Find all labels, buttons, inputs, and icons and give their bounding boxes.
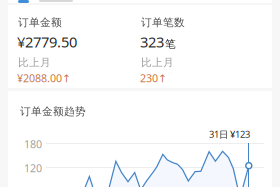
staticText: 323 (140, 32, 164, 51)
staticText: 120 (24, 161, 42, 175)
staticText: 比上月 (141, 56, 174, 69)
button[interactable]: 订单金额 (0, 0, 280, 88)
button[interactable]: 订单金额趋势 (0, 0, 280, 96)
staticText: 笔 (165, 37, 176, 50)
staticText: 31日 ¥123 (209, 128, 250, 140)
staticText: 订单金额趋势 (20, 105, 86, 118)
staticText: 180 (24, 137, 42, 151)
staticText: ¥2088.00↑ (17, 71, 71, 85)
button[interactable]: 上一张卡片 (0, 0, 280, 3)
staticText: 比上月 (18, 56, 51, 69)
staticText: ¥2779.50 (17, 32, 77, 51)
staticText: 订单金额 (18, 16, 62, 29)
staticText: 230↑ (140, 71, 167, 85)
staticText: 订单笔数 (141, 16, 185, 29)
